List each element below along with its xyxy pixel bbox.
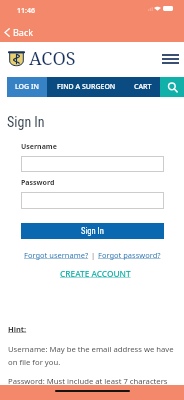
button[interactable]: CART — [125, 77, 160, 97]
button[interactable]: Forgot username? — [24, 250, 89, 260]
staticText: Sign In — [7, 114, 45, 130]
button[interactable]: LOG IN — [7, 77, 47, 97]
staticText: 11:46 — [17, 6, 35, 16]
staticText: Back — [13, 26, 34, 38]
staticText: ACOS — [29, 46, 76, 71]
staticText: Username — [21, 142, 57, 152]
button[interactable]: Menu — [159, 48, 181, 70]
button[interactable]: Back — [1, 24, 37, 40]
staticText: | — [89, 250, 98, 260]
button[interactable]: Search — [160, 77, 184, 97]
staticText: Username: May be the email address we ha… — [8, 344, 178, 367]
button[interactable]: Sign In — [21, 223, 164, 239]
button[interactable]: CREATE ACCOUNT — [60, 268, 131, 279]
staticText: Hint: — [8, 324, 27, 334]
staticText: Sign In — [81, 226, 104, 236]
button[interactable] — [21, 192, 164, 209]
button[interactable]: ACOS — [8, 46, 76, 71]
button[interactable]: FIND A SURGEON — [47, 77, 125, 97]
staticText: Password: Must include at least 7 charac… — [8, 376, 168, 386]
staticText: LOG IN — [15, 82, 39, 92]
button[interactable]: Forgot password? — [98, 250, 161, 260]
staticText: CART — [134, 82, 152, 92]
staticText: Password — [21, 178, 55, 188]
staticText: FIND A SURGEON — [57, 82, 116, 92]
button[interactable] — [21, 156, 164, 172]
